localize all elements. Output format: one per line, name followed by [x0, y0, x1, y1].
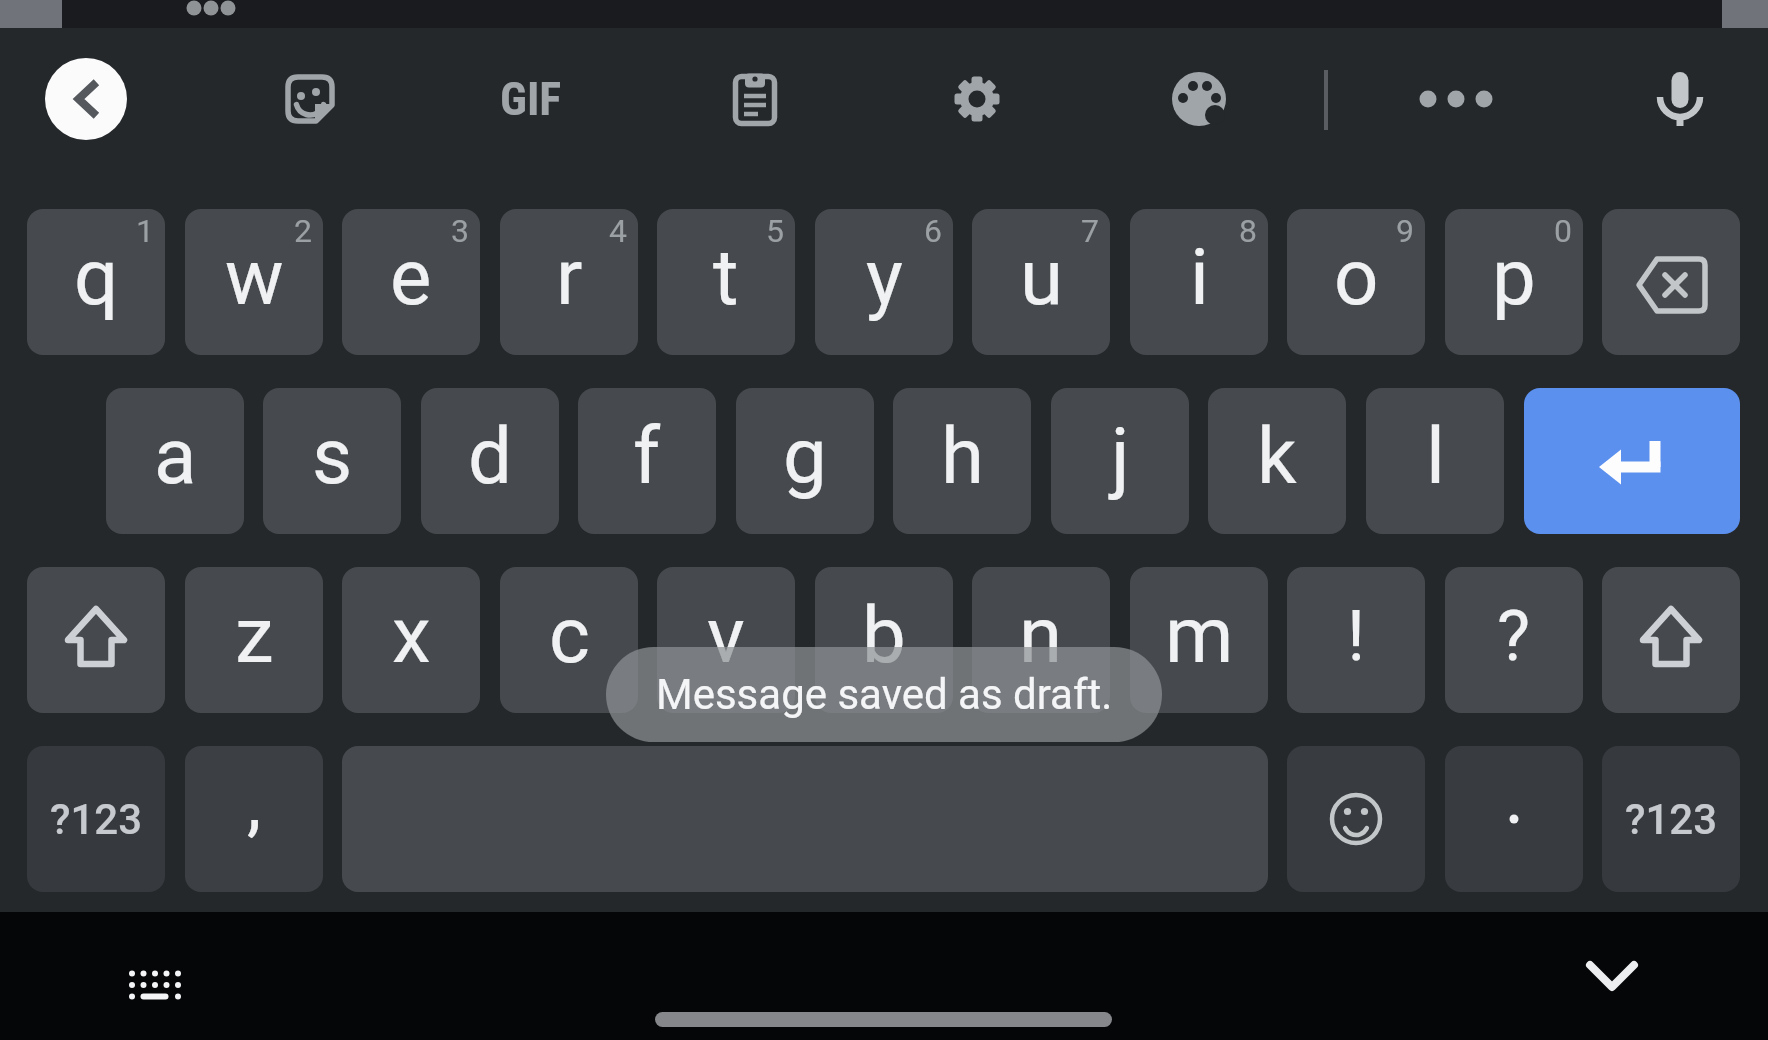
button[interactable]: ?123: [27, 746, 165, 892]
button[interactable]: [1406, 49, 1506, 149]
staticText: w: [225, 232, 284, 323]
staticText: 9: [1396, 212, 1414, 250]
button[interactable]: [1602, 209, 1740, 355]
button[interactable]: f: [578, 388, 716, 534]
staticText: 6: [924, 212, 942, 250]
staticText: p: [1492, 232, 1536, 323]
button[interactable]: c: [500, 567, 638, 713]
staticText: c: [549, 590, 590, 681]
staticText: z: [235, 590, 274, 681]
button[interactable]: l: [1366, 388, 1504, 534]
staticText: e: [390, 232, 432, 323]
button[interactable]: x: [342, 567, 480, 713]
button[interactable]: d: [421, 388, 559, 534]
button[interactable]: [1445, 746, 1583, 892]
button[interactable]: q: [27, 209, 165, 355]
staticText: 4: [609, 212, 627, 250]
button[interactable]: n: [972, 567, 1110, 713]
staticText: d: [468, 411, 512, 502]
staticText: v: [707, 590, 745, 681]
staticText: i: [1190, 232, 1209, 323]
staticText: h: [941, 411, 984, 502]
staticText: 0: [1554, 212, 1572, 250]
staticText: f: [633, 411, 661, 502]
button[interactable]: [927, 49, 1027, 149]
button[interactable]: j: [1051, 388, 1189, 534]
button[interactable]: m: [1130, 567, 1268, 713]
button[interactable]: e: [342, 209, 480, 355]
button[interactable]: [1149, 49, 1249, 149]
staticText: u: [1020, 232, 1063, 323]
button[interactable]: w: [185, 209, 323, 355]
button[interactable]: [105, 935, 205, 1015]
staticText: b: [862, 590, 906, 681]
button[interactable]: GIF: [471, 59, 591, 139]
staticText: q: [74, 232, 119, 323]
staticText: m: [1165, 590, 1234, 681]
staticText: 8: [1239, 212, 1257, 250]
button[interactable]: v: [657, 567, 795, 713]
staticText: o: [1334, 232, 1379, 323]
staticText: a: [154, 411, 197, 502]
button[interactable]: [45, 58, 127, 140]
button[interactable]: [1524, 388, 1740, 534]
staticText: !: [1347, 595, 1366, 677]
staticText: l: [1426, 411, 1445, 502]
button[interactable]: [1630, 49, 1730, 149]
button[interactable]: h: [893, 388, 1031, 534]
button[interactable]: [1562, 937, 1662, 1017]
button[interactable]: y: [815, 209, 953, 355]
staticText: j: [1111, 411, 1130, 502]
button[interactable]: [1287, 746, 1425, 892]
button[interactable]: t: [657, 209, 795, 355]
button[interactable]: k: [1208, 388, 1346, 534]
button[interactable]: [260, 49, 360, 149]
staticText: GIF: [500, 72, 562, 126]
staticText: ?123: [50, 795, 143, 844]
button[interactable]: [27, 567, 165, 713]
button[interactable]: b: [815, 567, 953, 713]
button[interactable]: a: [106, 388, 244, 534]
button[interactable]: u: [972, 209, 1110, 355]
button[interactable]: p: [1445, 209, 1583, 355]
button[interactable]: [1602, 567, 1740, 713]
button[interactable]: ?: [1445, 567, 1583, 713]
staticText: k: [1257, 411, 1297, 502]
staticText: 1: [136, 212, 154, 250]
button[interactable]: ,: [185, 746, 323, 892]
staticText: x: [392, 590, 431, 681]
staticText: 2: [294, 212, 312, 250]
button[interactable]: !: [1287, 567, 1425, 713]
staticText: t: [713, 232, 739, 323]
staticText: ,: [247, 761, 262, 845]
button[interactable]: o: [1287, 209, 1425, 355]
button[interactable]: r: [500, 209, 638, 355]
staticText: y: [866, 232, 903, 323]
staticText: g: [783, 411, 827, 502]
staticText: ?123: [1625, 795, 1718, 844]
button[interactable]: s: [263, 388, 401, 534]
staticText: 5: [766, 212, 784, 250]
button[interactable]: z: [185, 567, 323, 713]
staticText: r: [556, 232, 583, 323]
button[interactable]: i: [1130, 209, 1268, 355]
staticText: s: [312, 411, 353, 502]
button[interactable]: g: [736, 388, 874, 534]
staticText: Message saved as draft.: [656, 670, 1113, 719]
staticText: ?: [1497, 595, 1531, 677]
staticText: n: [1019, 590, 1063, 681]
button[interactable]: [705, 49, 805, 149]
staticText: 7: [1081, 212, 1099, 250]
button[interactable]: ?123: [1602, 746, 1740, 892]
staticText: 3: [451, 212, 469, 250]
